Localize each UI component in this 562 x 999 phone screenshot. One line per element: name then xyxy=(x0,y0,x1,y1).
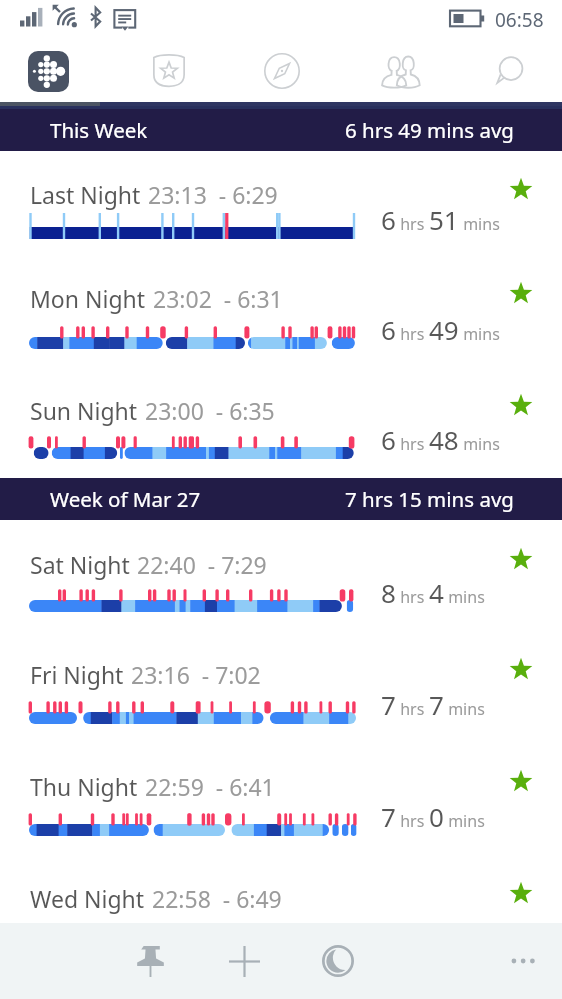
staticText: 22:58 - 6:49 xyxy=(152,883,282,914)
button[interactable]: Last Night xyxy=(0,151,562,261)
staticText: hrs xyxy=(396,213,429,235)
staticText: 48 xyxy=(429,422,459,457)
button[interactable]: Add xyxy=(212,930,276,992)
button[interactable]: Sat Night xyxy=(0,520,562,630)
staticText: 22:40 - 7:29 xyxy=(137,549,267,580)
staticText: 4 xyxy=(429,575,444,610)
button[interactable]: Friends xyxy=(368,46,434,100)
button[interactable]: Mon Night xyxy=(0,261,562,371)
staticText: hrs xyxy=(396,698,429,720)
staticText: 7 xyxy=(381,687,396,722)
button[interactable]: Wed Night xyxy=(0,855,562,965)
staticText: hrs xyxy=(396,810,429,832)
staticText: 51 xyxy=(429,202,459,237)
staticText: 7 hrs 15 mins avg xyxy=(345,485,514,513)
staticText: 7 xyxy=(381,799,396,834)
staticText: 23:00 - 6:35 xyxy=(145,395,275,426)
button[interactable]: Fri Night xyxy=(0,631,562,741)
button[interactable]: Thu Night xyxy=(0,743,562,853)
staticText: mins xyxy=(459,323,500,345)
staticText: hrs xyxy=(396,586,429,608)
staticText: Week of Mar 27 xyxy=(50,485,201,513)
staticText: 06:58 xyxy=(495,7,544,33)
staticText: Last Night xyxy=(30,179,141,210)
button[interactable]: Week of Mar 27 xyxy=(0,478,562,520)
button[interactable]: Sleep mode xyxy=(306,930,370,992)
staticText: Sun Night xyxy=(30,395,138,426)
staticText: Fri Night xyxy=(30,659,124,690)
staticText: 0 xyxy=(429,799,444,834)
staticText: 6 xyxy=(381,312,396,347)
staticText: 52 xyxy=(429,915,459,950)
button[interactable]: Messages xyxy=(476,44,542,98)
staticText: mins xyxy=(444,586,485,608)
staticText: 8 xyxy=(381,575,396,610)
staticText: mins xyxy=(444,698,485,720)
staticText: Mon Night xyxy=(30,283,146,314)
staticText: 23:13 - 6:29 xyxy=(148,179,278,210)
button[interactable]: Dashboard xyxy=(6,44,91,98)
staticText: mins xyxy=(459,213,500,235)
staticText: hrs xyxy=(396,433,429,455)
button[interactable]: Challenges xyxy=(136,44,202,98)
staticText: Sat Night xyxy=(30,549,130,580)
staticText: Wed Night xyxy=(30,883,145,914)
staticText: 23:16 - 7:02 xyxy=(131,659,261,690)
staticText: 6 xyxy=(381,915,396,950)
button[interactable]: This Week xyxy=(0,109,562,151)
button[interactable]: Guidance xyxy=(249,44,315,98)
button[interactable]: Pin xyxy=(118,930,182,992)
staticText: This Week xyxy=(50,116,148,144)
staticText: 23:02 - 6:31 xyxy=(153,283,283,314)
staticText: 6 xyxy=(381,422,396,457)
staticText: mins xyxy=(444,810,485,832)
staticText: 6 hrs 49 mins avg xyxy=(345,116,514,144)
staticText: Thu Night xyxy=(30,771,138,802)
staticText: hrs xyxy=(396,323,429,345)
staticText: mins xyxy=(459,433,500,455)
button[interactable]: Sun Night xyxy=(0,373,562,483)
staticText: 22:59 - 6:41 xyxy=(145,771,275,802)
staticText: 49 xyxy=(429,312,459,347)
staticText: 7 xyxy=(429,687,444,722)
staticText: 6 xyxy=(381,202,396,237)
button[interactable]: More options xyxy=(492,930,556,992)
